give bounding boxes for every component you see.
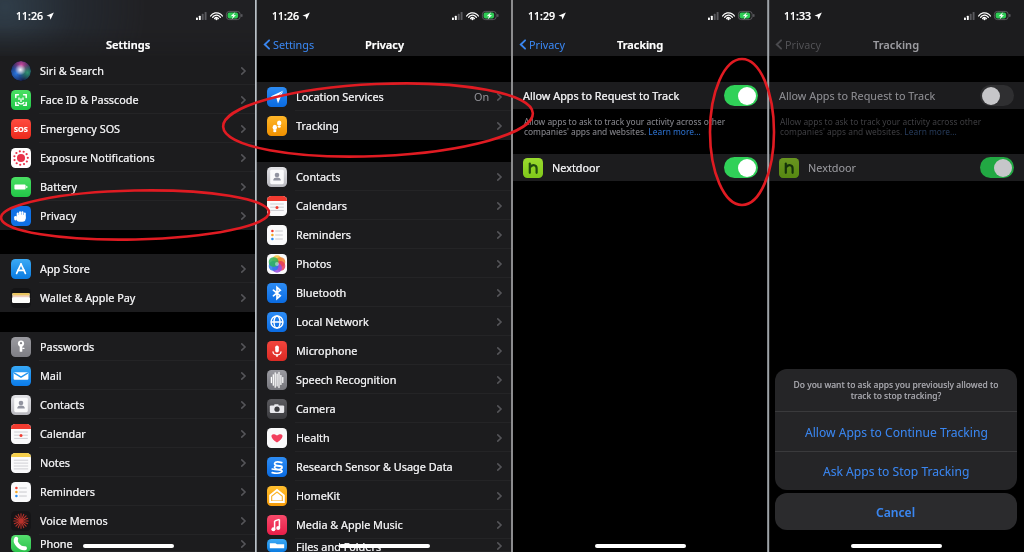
staticText: Passwords: [40, 339, 95, 354]
staticText: Camera: [296, 401, 336, 416]
staticText: Location Services: [296, 89, 384, 104]
button[interactable]: Reminders: [0, 477, 256, 506]
staticText: Photos: [296, 256, 332, 271]
staticText: Reminders: [40, 484, 95, 499]
button[interactable]: Ask Apps to Stop Tracking: [775, 452, 1017, 490]
button[interactable]: Siri & Search: [0, 56, 256, 85]
staticText: Media & Apple Music: [296, 517, 403, 532]
button[interactable]: Allow Apps to Request to Track: [512, 82, 768, 109]
staticText: Privacy: [365, 37, 404, 52]
button[interactable]: Nextdoor: [512, 154, 768, 181]
button[interactable]: Bluetooth: [256, 278, 512, 307]
staticText: Wallet & Apple Pay: [40, 290, 136, 305]
staticText: Calendars: [296, 198, 347, 213]
button[interactable]: Voice Memos: [0, 506, 256, 535]
button[interactable]: Face ID & Passcode: [0, 85, 256, 114]
staticText: Files and Folders: [296, 539, 382, 552]
staticText: 11:29: [528, 9, 556, 23]
staticText: Do you want to ask apps you previously a…: [791, 379, 1001, 401]
button[interactable]: Tracking: [256, 111, 512, 140]
staticText: Microphone: [296, 343, 358, 358]
button[interactable]: Research Sensor & Usage Data: [256, 452, 512, 481]
button[interactable]: Cancel: [775, 493, 1017, 530]
button[interactable]: Back to Privacy: [519, 37, 566, 52]
staticText: Cancel: [876, 504, 916, 520]
staticText: Mail: [40, 368, 62, 383]
staticText: Privacy: [785, 37, 822, 52]
staticText: Voice Memos: [40, 513, 108, 528]
staticText: Reminders: [296, 227, 351, 242]
staticText: Ask Apps to Stop Tracking: [823, 463, 970, 479]
staticText: Battery: [40, 179, 78, 194]
button[interactable]: Contacts: [256, 162, 512, 191]
button[interactable]: Notes: [0, 448, 256, 477]
staticText: App Store: [40, 261, 90, 276]
button[interactable]: Location Services: [256, 82, 512, 111]
staticText: Tracking: [617, 37, 664, 52]
button[interactable]: Exposure Notifications: [0, 143, 256, 172]
button[interactable]: Mail: [0, 361, 256, 390]
button[interactable]: Toggle, on: [724, 157, 758, 178]
staticText: HomeKit: [296, 488, 341, 503]
button[interactable]: Contacts: [0, 390, 256, 419]
button[interactable]: Wallet & Apple Pay: [0, 283, 256, 312]
button[interactable]: Back to Settings: [263, 37, 315, 52]
button[interactable]: Nextdoor: [768, 154, 1024, 181]
staticText: Contacts: [40, 397, 85, 412]
button[interactable]: Toggle, on: [980, 157, 1014, 178]
staticText: 11:26: [16, 9, 44, 23]
staticText: Nextdoor: [808, 160, 857, 175]
staticText: SOS: [14, 124, 28, 134]
button[interactable]: Allow Apps to Continue Tracking: [775, 412, 1017, 451]
button[interactable]: Camera: [256, 394, 512, 423]
staticText: Contacts: [296, 169, 341, 184]
staticText: 11:33: [784, 9, 812, 23]
button[interactable]: Local Network: [256, 307, 512, 336]
staticText: Exposure Notifications: [40, 150, 155, 165]
button[interactable]: App Store: [0, 254, 256, 283]
button[interactable]: Media & Apple Music: [256, 510, 512, 539]
button[interactable]: Speech Recognition: [256, 365, 512, 394]
staticText: Allow Apps to Request to Track: [523, 88, 680, 103]
staticText: Phone: [40, 536, 73, 551]
button[interactable]: Phone: [0, 535, 256, 552]
staticText: Speech Recognition: [296, 372, 397, 387]
staticText: Privacy: [529, 37, 566, 52]
staticText: Research Sensor & Usage Data: [296, 459, 453, 474]
staticText: Tracking: [873, 37, 920, 52]
button[interactable]: Toggle, off: [980, 85, 1014, 106]
button[interactable]: Calendars: [256, 191, 512, 220]
staticText: Allow apps to ask to track your activity…: [780, 116, 1010, 137]
staticText: Nextdoor: [552, 160, 601, 175]
staticText: 11:26: [272, 9, 300, 23]
staticText: Notes: [40, 455, 71, 470]
staticText: Local Network: [296, 314, 369, 329]
button[interactable]: Microphone: [256, 336, 512, 365]
button[interactable]: Allow Apps to Request to Track: [768, 82, 1024, 109]
staticText: Settings: [273, 37, 315, 52]
button[interactable]: Files and Folders: [256, 539, 512, 552]
staticText: Allow Apps to Continue Tracking: [805, 424, 988, 440]
button[interactable]: SOS: [0, 114, 256, 143]
staticText: Tracking: [296, 118, 339, 133]
staticText: Health: [296, 430, 330, 445]
button[interactable]: Photos: [256, 249, 512, 278]
staticText: Settings: [106, 37, 151, 52]
staticText: Emergency SOS: [40, 121, 121, 136]
button[interactable]: Battery: [0, 172, 256, 201]
staticText: On: [474, 89, 490, 104]
staticText: Allow apps to ask to track your activity…: [524, 116, 754, 137]
button[interactable]: Passwords: [0, 332, 256, 361]
staticText: Allow Apps to Request to Track: [779, 88, 936, 103]
button[interactable]: Calendar: [0, 419, 256, 448]
button[interactable]: HomeKit: [256, 481, 512, 510]
button[interactable]: Reminders: [256, 220, 512, 249]
staticText: Siri & Search: [40, 63, 104, 78]
button[interactable]: Health: [256, 423, 512, 452]
staticText: Privacy: [40, 208, 77, 223]
button[interactable]: Back to Privacy: [775, 37, 822, 52]
staticText: Bluetooth: [296, 285, 347, 300]
button[interactable]: Privacy: [0, 201, 256, 230]
button[interactable]: Toggle, on: [724, 85, 758, 106]
staticText: Face ID & Passcode: [40, 92, 139, 107]
